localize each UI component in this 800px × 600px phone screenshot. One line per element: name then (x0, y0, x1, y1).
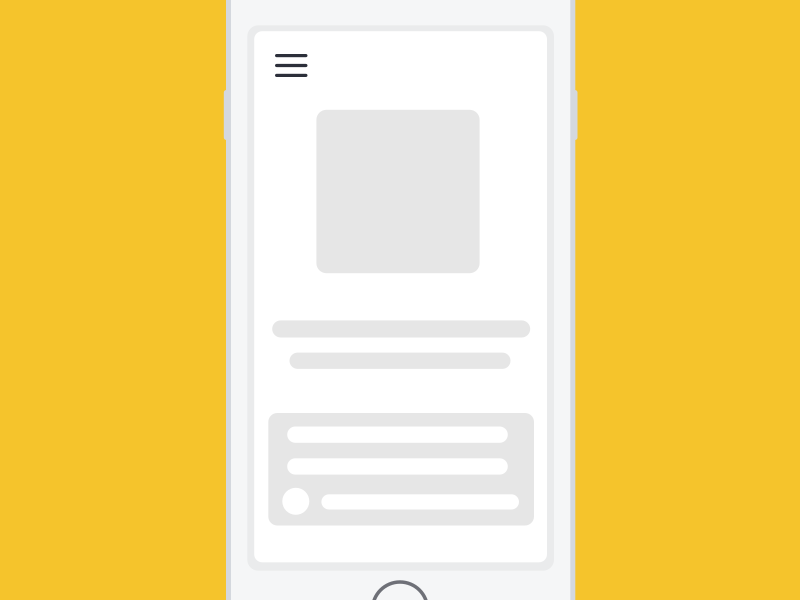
button[interactable]: Menu (264, 43, 318, 88)
